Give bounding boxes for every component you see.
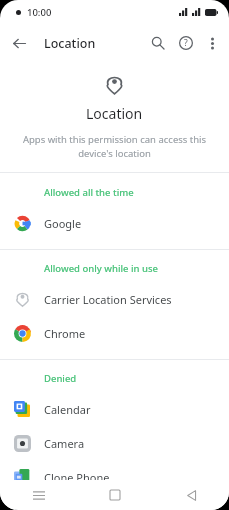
staticText: Carrier Location Services [44, 292, 172, 307]
staticText: Camera [44, 436, 85, 451]
staticText: Compass [44, 495, 92, 510]
staticText: Google [44, 216, 82, 231]
staticText: Location [44, 35, 96, 52]
button[interactable]: Clone Phone [0, 460, 229, 494]
button[interactable]: Camera [0, 426, 229, 460]
button[interactable]: More options [200, 31, 224, 55]
button[interactable]: Calendar [0, 392, 229, 426]
button[interactable]: Back [153, 480, 229, 510]
staticText: Denied [44, 372, 77, 385]
button[interactable]: Help [172, 29, 200, 57]
staticText: ? [184, 37, 188, 49]
staticText: Clone Phone [44, 470, 110, 485]
button[interactable]: Compass [0, 494, 229, 510]
staticText: Calendar [44, 402, 91, 417]
button[interactable]: Back [5, 29, 33, 57]
button[interactable]: Chrome [0, 316, 229, 350]
button[interactable]: Recent apps [0, 480, 77, 510]
staticText: Allowed only while in use [44, 262, 158, 275]
staticText: Apps with this permission can access thi… [20, 133, 209, 160]
button[interactable]: Home [77, 480, 153, 510]
staticText: Location [86, 104, 143, 123]
staticText: Allowed all the time [44, 186, 134, 199]
button[interactable]: Google [0, 206, 229, 240]
staticText: Chrome [44, 326, 86, 341]
button[interactable]: Search [144, 29, 172, 57]
button[interactable]: Carrier Location Services [0, 282, 229, 316]
staticText: 10:00 [27, 6, 52, 19]
